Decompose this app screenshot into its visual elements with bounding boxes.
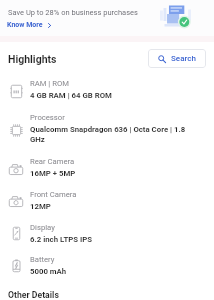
other: Know more [47, 23, 52, 28]
staticText: 6.2 inch LTPS IPS [30, 235, 191, 244]
staticText: 16MP + 5MP [30, 169, 191, 178]
staticText: 12MP [30, 202, 191, 211]
staticText: Front Camera [30, 190, 77, 199]
button[interactable]: Display [0, 223, 214, 251]
staticText: Display [30, 223, 55, 232]
button[interactable]: RAM and ROM [0, 79, 214, 107]
staticText: Processor [30, 113, 65, 122]
staticText: Qualcomm Snapdragon 636 | Octa Core | 1.… [30, 125, 191, 144]
button[interactable]: Know More [5, 19, 54, 31]
staticText: Highlights [8, 53, 57, 65]
other: RAM and ROM [9, 84, 23, 98]
staticText: Rear Camera [30, 157, 75, 166]
button[interactable]: Rear camera [0, 157, 214, 185]
other: Rear camera [9, 163, 23, 177]
button[interactable]: Front camera [0, 190, 214, 218]
other: Display [9, 226, 23, 240]
staticText: Search [171, 54, 196, 63]
button[interactable]: Battery [0, 255, 214, 283]
staticText: Save Up to 28% on business purchases [8, 8, 138, 17]
other: Processor [9, 123, 23, 137]
other: Front camera [9, 195, 23, 209]
staticText: Other Details [8, 290, 59, 300]
button[interactable]: Save Up to 28% on business purchases [0, 0, 214, 36]
button[interactable]: Search [148, 49, 206, 68]
staticText: Battery [30, 255, 55, 264]
staticText: Know More [7, 21, 43, 29]
other: Battery [9, 258, 23, 272]
staticText: 4 GB RAM | 64 GB ROM [30, 91, 191, 100]
button[interactable]: Processor [0, 113, 214, 141]
staticText: 5000 mAh [30, 267, 191, 276]
staticText: RAM | ROM [30, 79, 69, 88]
